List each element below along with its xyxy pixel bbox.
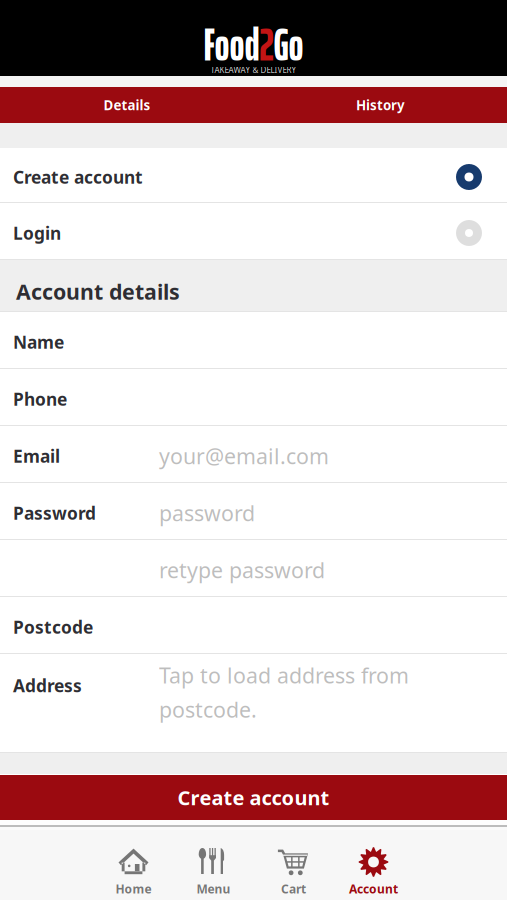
button[interactable]: Home	[93, 829, 173, 900]
staticText: Food	[203, 9, 259, 80]
button[interactable]: Password	[0, 483, 507, 539]
button[interactable]: Cart	[253, 829, 333, 900]
staticText: Postcode	[13, 615, 93, 638]
button[interactable]: Address	[0, 654, 507, 752]
button[interactable]: Postcode	[0, 597, 507, 653]
staticText: Details	[103, 96, 150, 114]
staticText: Home	[115, 881, 151, 897]
staticText: Menu	[196, 881, 230, 897]
staticText: Create account	[177, 784, 329, 811]
staticText: 2	[259, 9, 273, 80]
button[interactable]: Email	[0, 426, 507, 482]
staticText: your@email.com	[159, 442, 329, 470]
button[interactable]: Menu	[173, 829, 253, 900]
button[interactable]: Login	[0, 203, 507, 259]
staticText: Login	[13, 221, 61, 244]
staticText: Cart	[281, 881, 306, 897]
button[interactable]	[0, 540, 507, 596]
button[interactable]: Account	[333, 829, 413, 900]
staticText: Tap to load address from postcode.	[159, 661, 409, 724]
staticText: Phone	[13, 387, 67, 410]
staticText: retype password	[159, 556, 325, 584]
button[interactable]: Phone	[0, 369, 507, 425]
staticText: Account	[349, 881, 398, 897]
staticText: Create account	[13, 165, 143, 188]
button[interactable]: Name	[0, 312, 507, 368]
staticText: password	[159, 499, 255, 527]
button[interactable]: Create account	[0, 148, 507, 202]
staticText: TAKEAWAY & DELIVERY	[210, 65, 296, 75]
staticText: Name	[13, 330, 64, 353]
staticText: Address	[13, 674, 82, 697]
button[interactable]: Create account	[0, 775, 507, 820]
staticText: Go	[273, 9, 303, 80]
staticText: History	[356, 96, 405, 114]
staticText: Account details	[16, 277, 180, 306]
button[interactable]: History	[254, 87, 507, 123]
staticText: Email	[13, 444, 60, 467]
staticText: Password	[13, 501, 96, 524]
button[interactable]: Details	[0, 87, 254, 123]
